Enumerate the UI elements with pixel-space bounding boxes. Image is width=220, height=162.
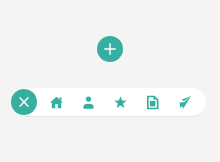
button[interactable]: Add (97, 36, 123, 62)
button[interactable]: Profile (72, 88, 104, 116)
button[interactable]: Send (168, 88, 200, 116)
button[interactable]: Close (11, 89, 37, 115)
button[interactable]: Documents (136, 88, 168, 116)
button[interactable]: Favourites (104, 88, 136, 116)
button[interactable]: Home (40, 88, 72, 116)
